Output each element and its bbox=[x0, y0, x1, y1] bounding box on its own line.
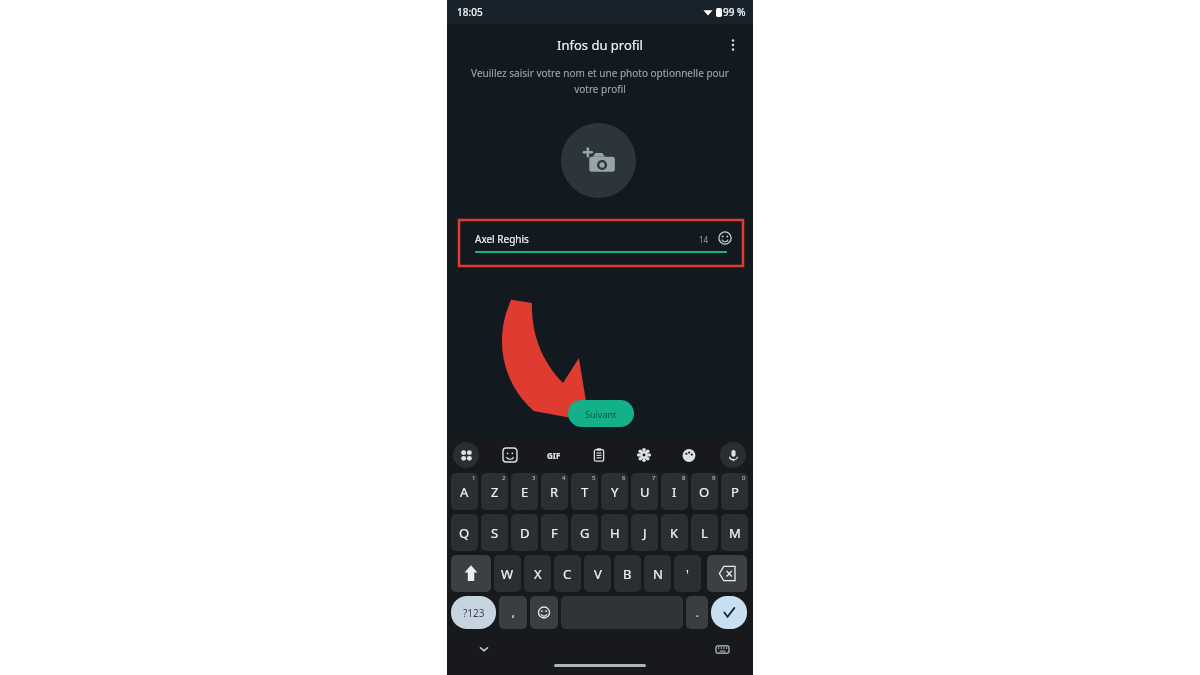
button[interactable]: , bbox=[499, 596, 527, 629]
staticText: 9 bbox=[712, 474, 716, 482]
button[interactable]: Y bbox=[601, 473, 628, 510]
staticText: . bbox=[696, 606, 699, 620]
staticText: Y bbox=[611, 483, 619, 501]
staticText: H bbox=[610, 524, 620, 542]
button[interactable]: Enter bbox=[711, 596, 747, 629]
staticText: O bbox=[699, 483, 710, 501]
staticText: 99 % bbox=[723, 5, 746, 19]
staticText: 6 bbox=[622, 474, 626, 482]
button[interactable]: S bbox=[481, 514, 508, 551]
button[interactable]: X bbox=[524, 555, 551, 592]
staticText: W bbox=[501, 565, 514, 583]
staticText: S bbox=[491, 524, 499, 542]
staticText: D bbox=[520, 524, 530, 542]
staticText: Z bbox=[491, 483, 499, 501]
staticText: V bbox=[594, 565, 602, 583]
staticText: C bbox=[563, 565, 572, 583]
staticText: 18:05 bbox=[457, 5, 483, 19]
button[interactable]: Clipboard bbox=[586, 442, 612, 468]
button[interactable]: Axel Reghis bbox=[465, 224, 737, 262]
button[interactable]: Hide keyboard bbox=[471, 636, 497, 662]
button[interactable]: L bbox=[691, 514, 718, 551]
button[interactable]: ' bbox=[674, 555, 701, 592]
staticText: 5 bbox=[592, 474, 596, 482]
button[interactable]: Emoji bbox=[530, 596, 558, 629]
staticText: , bbox=[512, 606, 515, 620]
staticText: L bbox=[701, 524, 708, 542]
staticText: G bbox=[580, 524, 590, 542]
button[interactable]: T bbox=[571, 473, 598, 510]
button[interactable]: A bbox=[451, 473, 478, 510]
staticText: K bbox=[670, 524, 679, 542]
button[interactable]: Shift bbox=[451, 555, 491, 592]
button[interactable]: N bbox=[644, 555, 671, 592]
button[interactable]: B bbox=[614, 555, 641, 592]
staticText: 2 bbox=[502, 474, 506, 482]
staticText: J bbox=[643, 524, 647, 542]
button[interactable]: H bbox=[601, 514, 628, 551]
button[interactable]: V bbox=[584, 555, 611, 592]
button[interactable]: GIF bbox=[541, 442, 567, 468]
button[interactable]: Backspace bbox=[707, 555, 747, 592]
button[interactable]: I bbox=[661, 473, 688, 510]
button[interactable]: Switch keyboard bbox=[709, 636, 735, 662]
staticText: X bbox=[534, 565, 542, 583]
staticText: E bbox=[521, 483, 529, 501]
button[interactable]: Stickers bbox=[497, 442, 523, 468]
staticText: A bbox=[460, 483, 469, 501]
button[interactable]: U bbox=[631, 473, 658, 510]
button[interactable]: W bbox=[494, 555, 521, 592]
staticText: T bbox=[581, 483, 589, 501]
button[interactable]: D bbox=[511, 514, 538, 551]
button[interactable]: G bbox=[571, 514, 598, 551]
staticText: 3 bbox=[532, 474, 536, 482]
button[interactable]: F bbox=[541, 514, 568, 551]
staticText: 1 bbox=[472, 474, 476, 482]
staticText: 14 bbox=[699, 234, 709, 245]
staticText: I bbox=[672, 483, 677, 501]
staticText: Veuillez saisir votre nom et une photo o… bbox=[467, 66, 733, 95]
staticText: 4 bbox=[562, 474, 566, 482]
button[interactable]: M bbox=[721, 514, 748, 551]
staticText: U bbox=[640, 483, 650, 501]
staticText: Infos du profil bbox=[557, 36, 643, 54]
button[interactable]: R bbox=[541, 473, 568, 510]
button[interactable]: . bbox=[686, 596, 708, 629]
staticText: B bbox=[623, 565, 632, 583]
button[interactable]: Q bbox=[451, 514, 478, 551]
button[interactable]: O bbox=[691, 473, 718, 510]
staticText: M bbox=[729, 524, 741, 542]
staticText: 0 bbox=[742, 474, 746, 482]
button[interactable]: K bbox=[661, 514, 688, 551]
button[interactable]: C bbox=[554, 555, 581, 592]
button[interactable]: Apps bbox=[453, 442, 479, 468]
button[interactable]: J bbox=[631, 514, 658, 551]
button[interactable]: Add profile photo bbox=[561, 123, 636, 198]
button[interactable]: Voice input bbox=[720, 442, 746, 468]
button[interactable]: ?123 bbox=[451, 596, 496, 629]
staticText: Suivant bbox=[585, 408, 617, 420]
staticText: ?123 bbox=[463, 606, 485, 620]
button[interactable]: Theme bbox=[676, 442, 702, 468]
staticText: P bbox=[731, 483, 739, 501]
staticText: Q bbox=[459, 524, 470, 542]
staticText: N bbox=[653, 565, 663, 583]
button[interactable]: Settings bbox=[631, 442, 657, 468]
staticText: 7 bbox=[652, 474, 656, 482]
staticText: GIF bbox=[547, 450, 561, 461]
staticText: R bbox=[550, 483, 559, 501]
staticText: ' bbox=[686, 565, 689, 583]
staticText: 8 bbox=[682, 474, 686, 482]
button[interactable]: Z bbox=[481, 473, 508, 510]
staticText: F bbox=[551, 524, 558, 542]
button[interactable]: E bbox=[511, 473, 538, 510]
button[interactable]: Suivant bbox=[568, 400, 634, 427]
staticText: Axel Reghis bbox=[475, 232, 529, 246]
button[interactable]: More options bbox=[720, 32, 746, 58]
button[interactable]: Emoji bbox=[717, 230, 733, 246]
button[interactable]: P bbox=[721, 473, 748, 510]
